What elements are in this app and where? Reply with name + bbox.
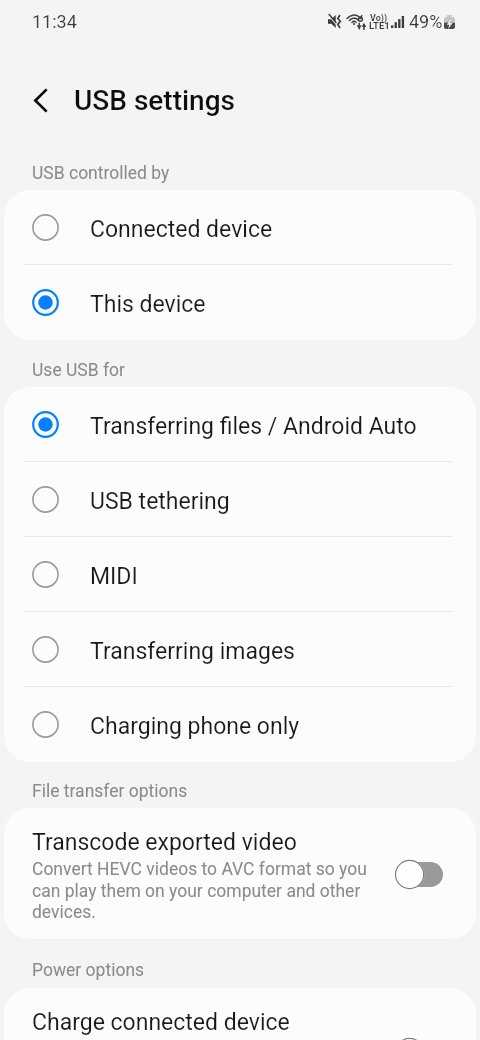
staticText: USB tethering [90, 488, 230, 515]
staticText: Transferring files / Android Auto [90, 413, 417, 440]
staticText: Transferring images [90, 638, 295, 665]
button[interactable]: Toggle [395, 858, 447, 891]
button[interactable]: Toggle [395, 1036, 447, 1040]
staticText: Vo)) [370, 13, 388, 24]
staticText: Charge connected device [32, 1009, 290, 1036]
staticText: LTE1 [369, 20, 390, 31]
staticText: Use USB for [32, 360, 125, 381]
staticText: MIDI [90, 563, 138, 590]
staticText: Power options [32, 960, 145, 981]
button[interactable]: This device [4, 265, 476, 340]
button[interactable]: Back [13, 72, 69, 128]
staticText: Connected device [90, 216, 273, 243]
staticText: USB settings [74, 84, 235, 117]
staticText: This device [90, 291, 206, 318]
button[interactable]: Connected device [4, 190, 476, 265]
staticText: File transfer options [32, 781, 188, 802]
staticText: Transcode exported video [32, 829, 297, 856]
staticText: 49% [409, 11, 443, 32]
button[interactable]: Charging phone only [4, 687, 476, 762]
staticText: USB controlled by [32, 163, 170, 184]
staticText: Convert HEVC videos to AVC format so you… [32, 859, 376, 922]
button[interactable]: Transferring files / Android Auto [4, 387, 476, 462]
button[interactable]: Transferring images [4, 612, 476, 687]
staticText: Charging phone only [90, 713, 300, 740]
staticText: 11:34 [32, 11, 77, 32]
button[interactable]: USB tethering [4, 462, 476, 537]
button[interactable]: MIDI [4, 537, 476, 612]
